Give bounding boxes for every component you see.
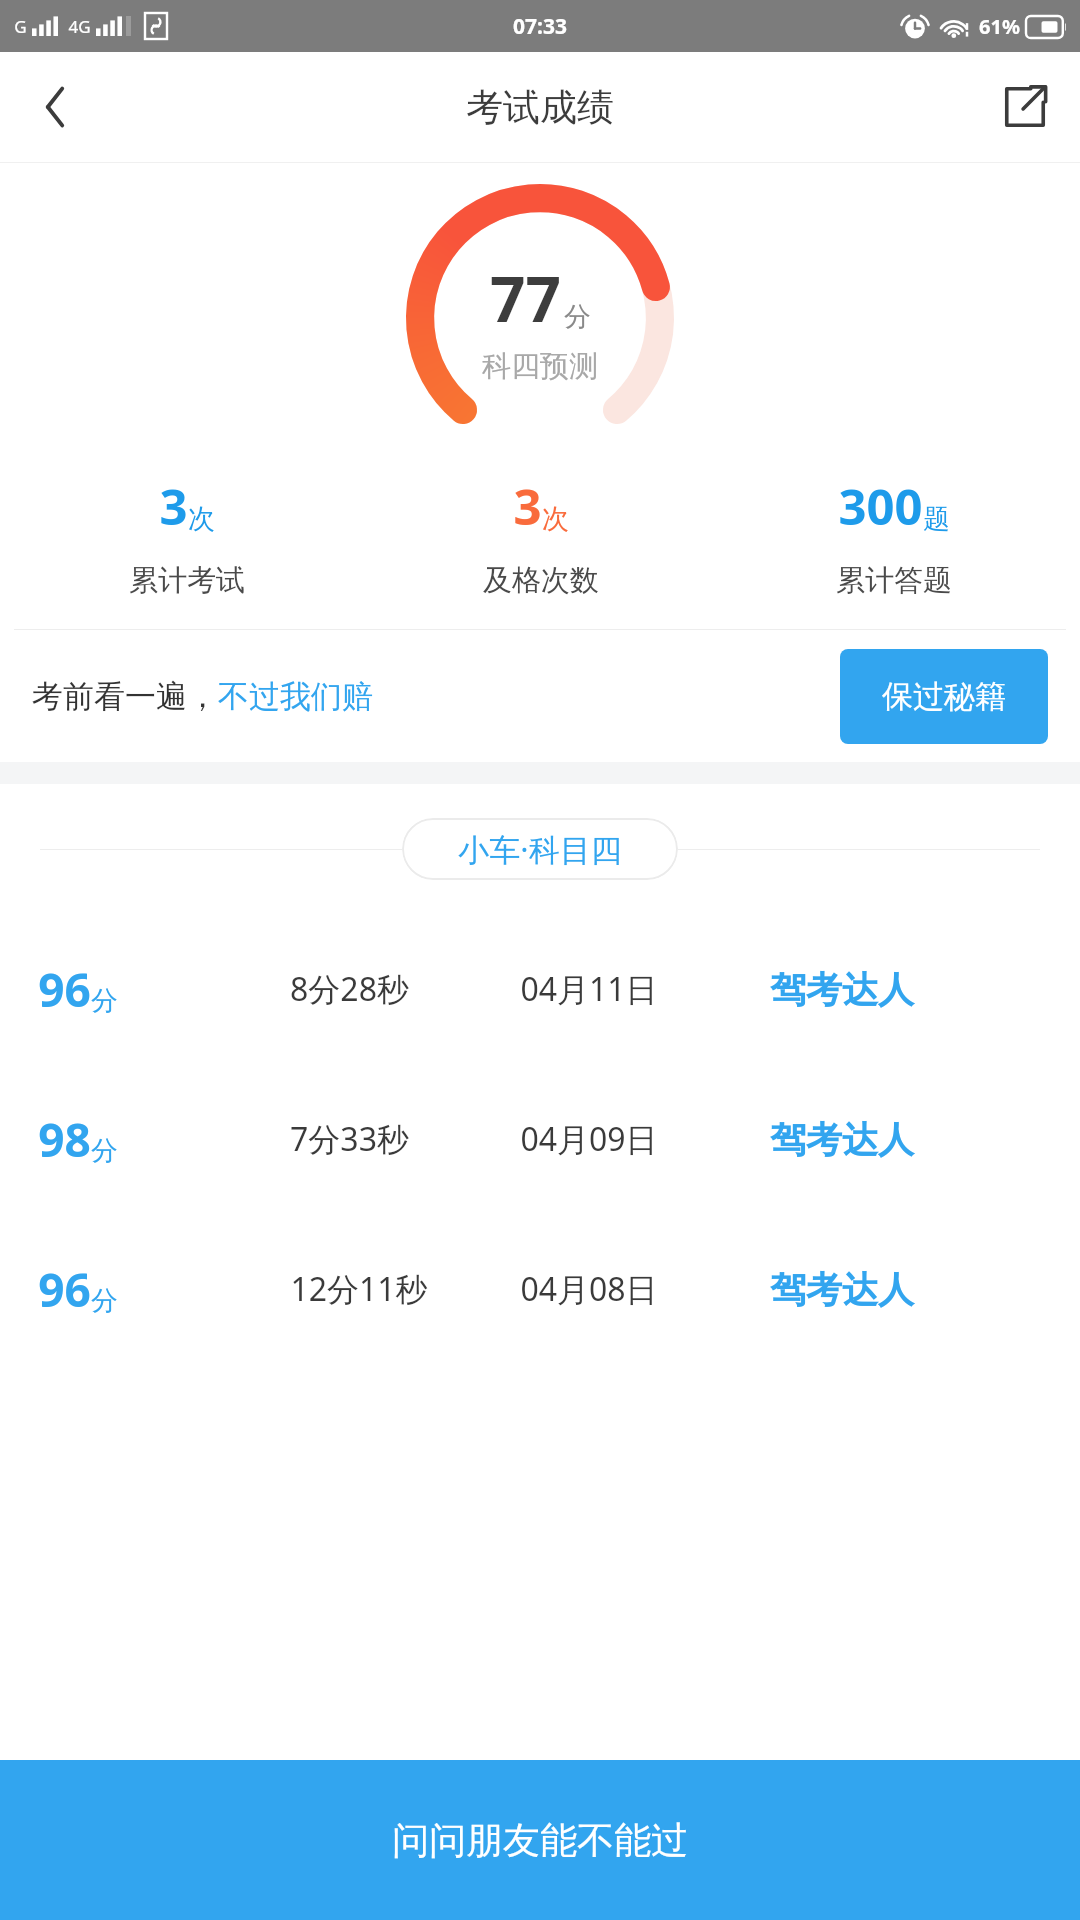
staticText: 4G — [68, 15, 91, 38]
staticText: 96 — [38, 958, 91, 1021]
button[interactable]: Back — [0, 52, 110, 162]
button[interactable]: 小车·科目四 — [402, 818, 678, 880]
staticText: 3 — [159, 473, 188, 540]
staticText: 12分11秒 — [290, 1267, 428, 1311]
staticText: 小车·科目四 — [458, 828, 622, 870]
staticText: 98 — [38, 1108, 91, 1171]
staticText: 8分28秒 — [290, 967, 409, 1011]
button[interactable]: 300 — [717, 473, 1070, 599]
staticText: 77 — [490, 256, 561, 340]
staticText: 04月11日 — [520, 967, 658, 1011]
button[interactable]: 3 — [364, 473, 717, 599]
staticText: 04月09日 — [520, 1117, 658, 1161]
staticText: 考试成绩 — [466, 84, 614, 131]
staticText: 问问朋友能不能过 — [392, 1817, 688, 1864]
staticText: 次 — [542, 502, 569, 536]
staticText: 次 — [188, 502, 215, 536]
staticText: 考前看一遍， — [32, 677, 218, 716]
button[interactable]: 96 — [0, 1214, 1080, 1364]
button[interactable]: 保过秘籍 — [840, 649, 1048, 744]
staticText: 及格次数 — [483, 562, 599, 599]
button[interactable]: Share — [970, 52, 1080, 162]
staticText: 7分33秒 — [290, 1117, 409, 1161]
staticText: 分 — [91, 1284, 118, 1318]
staticText: 科四预测 — [482, 348, 598, 385]
button[interactable]: 问问朋友能不能过 — [0, 1760, 1080, 1920]
staticText: 300 — [838, 473, 923, 540]
staticText: 3 — [513, 473, 542, 540]
staticText: 不过我们赔 — [218, 677, 373, 716]
staticText: 保过秘籍 — [882, 677, 1006, 716]
staticText: 07:33 — [513, 12, 567, 41]
staticText: 驾考达人 — [770, 1117, 914, 1162]
staticText: 61% — [979, 13, 1020, 40]
staticText: 04月08日 — [520, 1267, 658, 1311]
staticText: 分 — [91, 984, 118, 1018]
staticText: 累计答题 — [836, 562, 952, 599]
staticText: 驾考达人 — [770, 1267, 914, 1312]
button[interactable]: 98 — [0, 1064, 1080, 1214]
staticText: 96 — [38, 1258, 91, 1321]
button[interactable]: 3 — [10, 473, 364, 599]
button[interactable]: 96 — [0, 914, 1080, 1064]
staticText: 分 — [91, 1134, 118, 1168]
staticText: 题 — [923, 502, 950, 536]
staticText: 驾考达人 — [770, 967, 914, 1012]
staticText: 分 — [564, 300, 591, 334]
staticText: 累计考试 — [129, 562, 245, 599]
staticText: G — [14, 15, 27, 38]
